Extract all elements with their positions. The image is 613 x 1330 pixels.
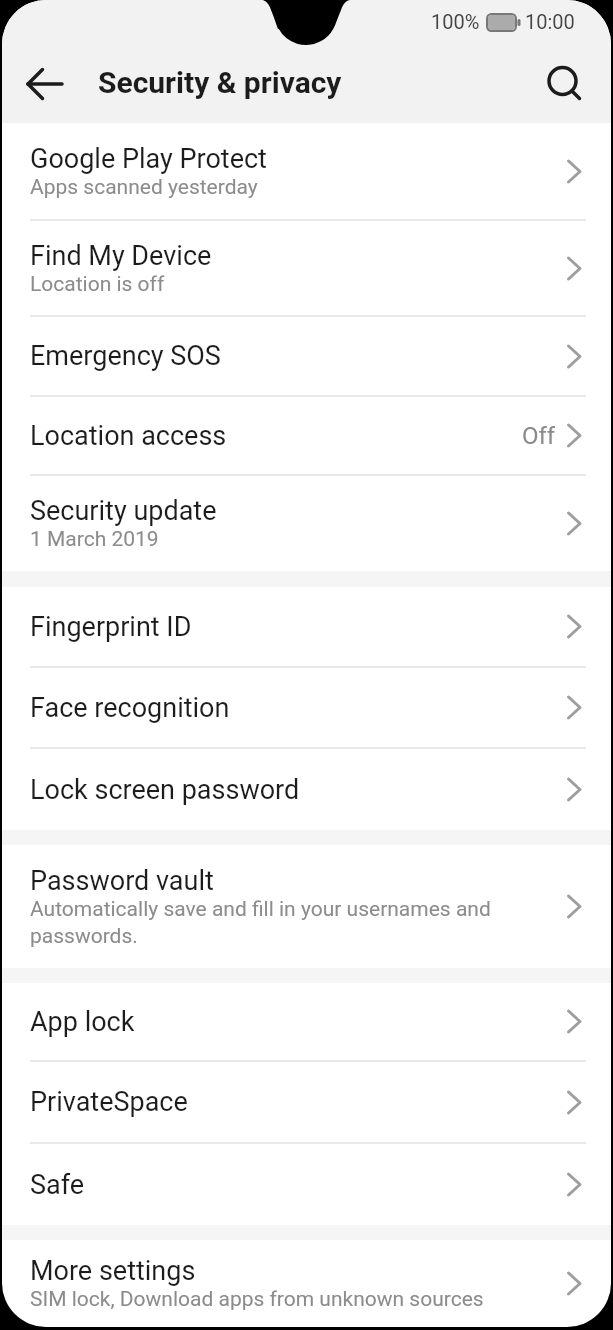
staticText: Automatically save and fill in your user… bbox=[30, 897, 491, 949]
staticText: Password vault bbox=[30, 865, 214, 897]
button[interactable]: Safe bbox=[2, 1144, 611, 1225]
button[interactable]: More settings bbox=[2, 1240, 611, 1327]
button[interactable]: Lock screen password bbox=[2, 749, 611, 830]
staticText: Apps scanned yesterday bbox=[30, 175, 258, 200]
button[interactable]: Face recognition bbox=[2, 668, 611, 747]
button[interactable]: Security update bbox=[2, 476, 611, 571]
button[interactable] bbox=[25, 65, 65, 101]
button[interactable]: Find My Device bbox=[2, 221, 611, 315]
staticText: Safe bbox=[30, 1169, 85, 1201]
staticText: 10:00 bbox=[525, 10, 575, 33]
staticText: Location is off bbox=[30, 272, 165, 297]
staticText: Fingerprint ID bbox=[30, 611, 192, 643]
button[interactable]: Google Play Protect bbox=[2, 123, 611, 219]
button[interactable]: PrivateSpace bbox=[2, 1062, 611, 1142]
staticText: App lock bbox=[30, 1006, 135, 1038]
staticText: Security update bbox=[30, 495, 217, 527]
staticText: Off bbox=[522, 422, 556, 450]
staticText: Security & privacy bbox=[98, 65, 342, 100]
staticText: Lock screen password bbox=[30, 774, 300, 806]
staticText: Find My Device bbox=[30, 240, 212, 272]
staticText: 1 March 2019 bbox=[30, 527, 159, 552]
button[interactable]: Fingerprint ID bbox=[2, 587, 611, 666]
staticText: Location access bbox=[30, 420, 227, 452]
staticText: More settings bbox=[30, 1255, 196, 1287]
staticText: PrivateSpace bbox=[30, 1086, 188, 1118]
button[interactable]: Emergency SOS bbox=[2, 317, 611, 395]
staticText: 100% bbox=[431, 10, 480, 33]
button[interactable] bbox=[548, 65, 584, 101]
button[interactable]: Password vault bbox=[2, 845, 611, 968]
staticText: Face recognition bbox=[30, 692, 230, 724]
staticText: SIM lock, Download apps from unknown sou… bbox=[30, 1287, 484, 1312]
button[interactable]: Location access bbox=[2, 397, 611, 474]
staticText: Emergency SOS bbox=[30, 340, 221, 372]
button[interactable]: App lock bbox=[2, 983, 611, 1060]
staticText: Google Play Protect bbox=[30, 143, 267, 175]
